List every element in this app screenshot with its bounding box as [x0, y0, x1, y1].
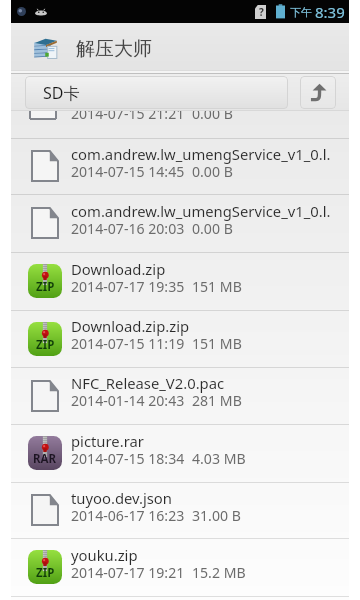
button[interactable]: SD卡 [25, 76, 288, 109]
staticText: 281 MB [192, 391, 242, 410]
staticText: 151 MB [192, 277, 242, 296]
staticText: 8:39 [315, 2, 345, 22]
staticText: 0.00 B [192, 111, 233, 123]
staticText: 下午 [290, 5, 312, 19]
button[interactable]: ZIP [11, 310, 349, 367]
button[interactable]: ZIP [11, 538, 349, 596]
staticText: 2014-06-17 16:23 [71, 506, 185, 525]
staticText: ZIP [36, 279, 55, 295]
staticText: 151 MB [192, 334, 242, 353]
staticText: youku.zip [71, 545, 138, 565]
staticText: 2014-07-16 20:03 [71, 219, 185, 238]
staticText: 2014-07-15 14:45 [71, 162, 185, 181]
staticText: Download.zip.zip [71, 316, 190, 336]
button[interactable]: tuyoo.dev.json [11, 482, 349, 538]
staticText: ZIP [36, 565, 55, 581]
staticText: 0.00 B [192, 162, 233, 181]
button[interactable]: Up one level [300, 76, 336, 109]
staticText: 0.00 B [192, 219, 233, 238]
button[interactable]: RAR [11, 424, 349, 482]
staticText: 2014-07-15 18:34 [71, 449, 185, 468]
staticText: 4.03 MB [192, 449, 246, 468]
staticText: NFC_Release_V2.0.pac [71, 373, 225, 393]
staticText: com.andrew.lw_umengService_v1_0.l. [71, 144, 331, 164]
staticText: RAR [33, 451, 57, 467]
staticText: ? [259, 5, 264, 19]
button[interactable]: com.andrew.lw_umengService_v1_0.l. [11, 194, 349, 252]
staticText: com.andrew.lw_umengService_v1_0.l. [71, 201, 331, 221]
staticText: SD卡 [43, 82, 80, 104]
staticText: Download.zip [71, 259, 166, 279]
staticText: 2014-07-17 19:21 [71, 563, 185, 582]
staticText: 15.2 MB [192, 563, 246, 582]
staticText: 2014-07-15 21:21 [71, 111, 185, 123]
button[interactable]: 2014-07-15 21:21 [11, 111, 349, 130]
staticText: 31.00 B [192, 506, 241, 525]
staticText: tuyoo.dev.json [71, 488, 172, 508]
button[interactable]: com.andrew.lw_umengService_v1_0.l. [11, 138, 349, 194]
staticText: 解压大师 [76, 37, 152, 61]
staticText: ZIP [36, 337, 55, 353]
button[interactable]: ZIP [11, 252, 349, 310]
staticText: 2014-01-14 20:43 [71, 391, 185, 410]
button[interactable]: NFC_Release_V2.0.pac [11, 367, 349, 424]
staticText: 2014-07-17 19:35 [71, 277, 185, 296]
staticText: 2014-07-15 11:19 [71, 334, 185, 353]
staticText: picture.rar [71, 431, 144, 451]
